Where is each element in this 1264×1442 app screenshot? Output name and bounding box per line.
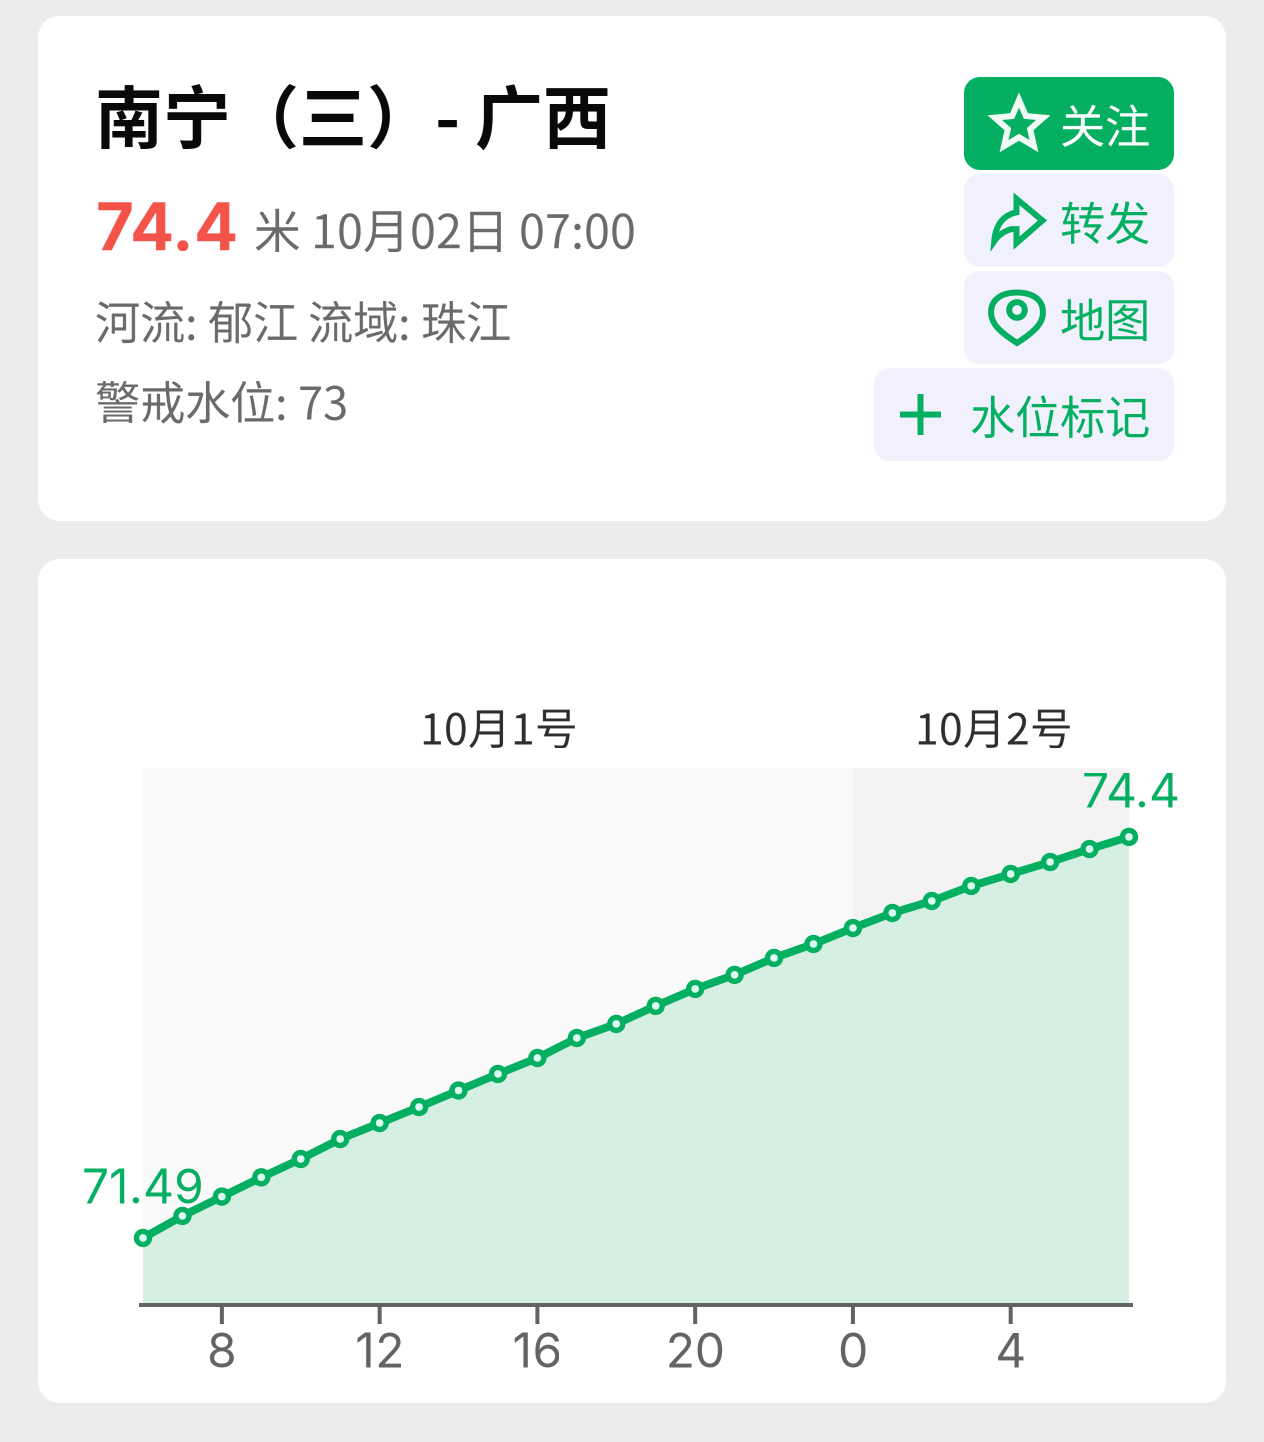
staticText: 20 [666, 1321, 725, 1379]
button[interactable]: 水位标记 [874, 368, 1174, 461]
staticText: 关注 [1060, 91, 1150, 156]
staticText: 南宁（三）- 广西 [95, 64, 611, 162]
button[interactable]: 地图 [964, 271, 1174, 364]
staticText: 74.4 [1082, 761, 1180, 819]
staticText: 74.4 [96, 187, 238, 266]
staticText: 河流: 郁江 流域: 珠江 [95, 287, 511, 353]
button[interactable]: 转发 [964, 174, 1174, 267]
button[interactable]: 关注 [964, 77, 1174, 170]
staticText: 4 [995, 1321, 1026, 1379]
staticText: 转发 [1060, 188, 1150, 253]
staticText: 10月2号 [915, 695, 1073, 757]
staticText: 地图 [1060, 285, 1150, 350]
staticText: 警戒水位: 73 [95, 367, 348, 433]
staticText: 8 [207, 1321, 237, 1379]
staticText: 16 [512, 1321, 562, 1379]
staticText: 0 [838, 1321, 868, 1379]
staticText: 水位标记 [970, 382, 1150, 447]
staticText: 12 [355, 1321, 404, 1379]
staticText: 米 10月02日 07:00 [254, 194, 636, 262]
staticText: 71.49 [82, 1157, 204, 1215]
staticText: 10月1号 [420, 695, 578, 757]
